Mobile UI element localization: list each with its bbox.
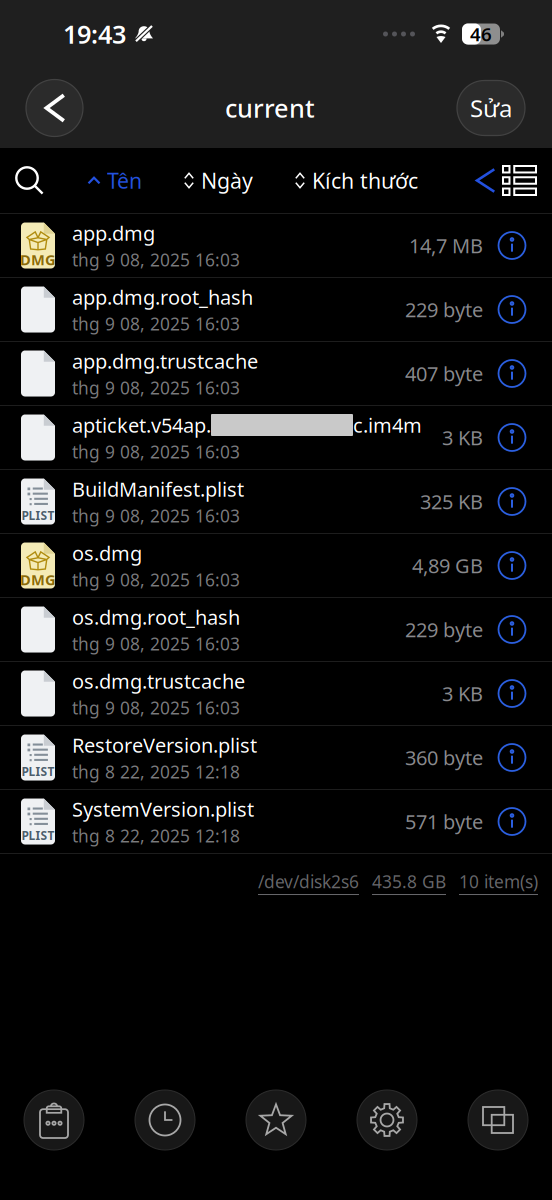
staticText: DMG: [20, 570, 56, 589]
staticText: thg 9 08, 2025 16:03: [72, 312, 240, 335]
staticText: 229 byte: [405, 296, 483, 323]
staticText: 4,89 GB: [412, 552, 483, 579]
staticText: thg 8 22, 2025 12:18: [72, 760, 240, 783]
staticText: thg 9 08, 2025 16:03: [72, 568, 240, 591]
staticText: 571 byte: [405, 808, 483, 835]
staticText: app.dmg: [72, 220, 155, 246]
staticText: PLIST: [21, 827, 54, 843]
staticText: SystemVersion.plist: [72, 796, 254, 822]
button[interactable]: PLIST: [0, 726, 552, 789]
staticText: thg 9 08, 2025 16:03: [72, 376, 240, 399]
staticText: 325 KB: [420, 488, 483, 515]
staticText: /dev/disk2s6: [258, 870, 359, 893]
button[interactable]: Ngày: [183, 156, 253, 205]
button[interactable]: Info: [483, 280, 541, 338]
staticText: thg 9 08, 2025 16:03: [72, 632, 240, 655]
button[interactable]: Info: [483, 408, 541, 466]
staticText: os.dmg.trustcache: [72, 668, 245, 694]
staticText: 10 item(s): [459, 870, 538, 893]
staticText: app.dmg.trustcache: [72, 348, 258, 374]
staticText: os.dmg.root_hash: [72, 604, 240, 630]
button[interactable]: Info: [483, 600, 541, 658]
staticText: RestoreVersion.plist: [72, 732, 257, 758]
button[interactable]: Search: [0, 163, 46, 197]
button[interactable]: Recents: [135, 1090, 195, 1150]
button[interactable]: DMG: [0, 214, 552, 277]
button[interactable]: Collapse: [459, 166, 503, 194]
button[interactable]: PLIST: [0, 790, 552, 853]
staticText: 229 byte: [405, 616, 483, 643]
staticText: apticket.v54ap.: [72, 412, 211, 438]
staticText: app.dmg.root_hash: [72, 284, 253, 310]
staticText: os.dmg: [72, 540, 142, 566]
staticText: current: [225, 91, 315, 125]
staticText: 19:43: [63, 17, 126, 51]
button[interactable]: Info: [483, 536, 541, 594]
staticText: Kích thước: [312, 166, 418, 195]
staticText: Sửa: [470, 92, 512, 124]
staticText: 46: [470, 22, 492, 46]
staticText: Tên: [107, 166, 142, 195]
button[interactable]: Kích thước: [294, 156, 418, 205]
button[interactable]: app.dmg.trustcache: [0, 342, 552, 405]
staticText: BuildManifest.plist: [72, 476, 244, 502]
staticText: 360 byte: [405, 744, 483, 771]
button[interactable]: Back: [26, 79, 83, 136]
button[interactable]: Tên: [87, 156, 142, 205]
staticText: PLIST: [21, 507, 54, 523]
staticText: thg 9 08, 2025 16:03: [72, 440, 240, 463]
staticText: 14,7 MB: [409, 232, 483, 259]
button[interactable]: Sửa: [457, 80, 525, 135]
staticText: thg 8 22, 2025 12:18: [72, 824, 240, 847]
staticText: 3 KB: [442, 424, 483, 451]
button[interactable]: Info: [483, 792, 541, 850]
button[interactable]: Settings: [357, 1090, 417, 1150]
button[interactable]: Clipboard: [24, 1090, 84, 1150]
staticText: 407 byte: [405, 360, 483, 387]
button[interactable]: Info: [483, 472, 541, 530]
button[interactable]: app.dmg.root_hash: [0, 278, 552, 341]
button[interactable]: Windows: [468, 1090, 528, 1150]
button[interactable]: apticket.v54ap.: [0, 406, 552, 469]
staticText: thg 9 08, 2025 16:03: [72, 504, 240, 527]
staticText: 435.8 GB: [372, 870, 446, 893]
staticText: DMG: [20, 250, 56, 269]
button[interactable]: os.dmg.trustcache: [0, 662, 552, 725]
staticText: Ngày: [201, 166, 253, 195]
staticText: thg 9 08, 2025 16:03: [72, 696, 240, 719]
staticText: thg 9 08, 2025 16:03: [72, 248, 240, 271]
staticText: c.im4m: [353, 412, 422, 438]
button[interactable]: Info: [483, 344, 541, 402]
button[interactable]: PLIST: [0, 470, 552, 533]
button[interactable]: Info: [483, 728, 541, 786]
button[interactable]: Favourites: [246, 1090, 306, 1150]
staticText: 3 KB: [442, 680, 483, 707]
button[interactable]: DMG: [0, 534, 552, 597]
button[interactable]: Info: [483, 664, 541, 722]
button[interactable]: View options: [503, 166, 552, 195]
button[interactable]: os.dmg.root_hash: [0, 598, 552, 661]
button[interactable]: Info: [483, 216, 541, 274]
staticText: PLIST: [21, 763, 54, 779]
